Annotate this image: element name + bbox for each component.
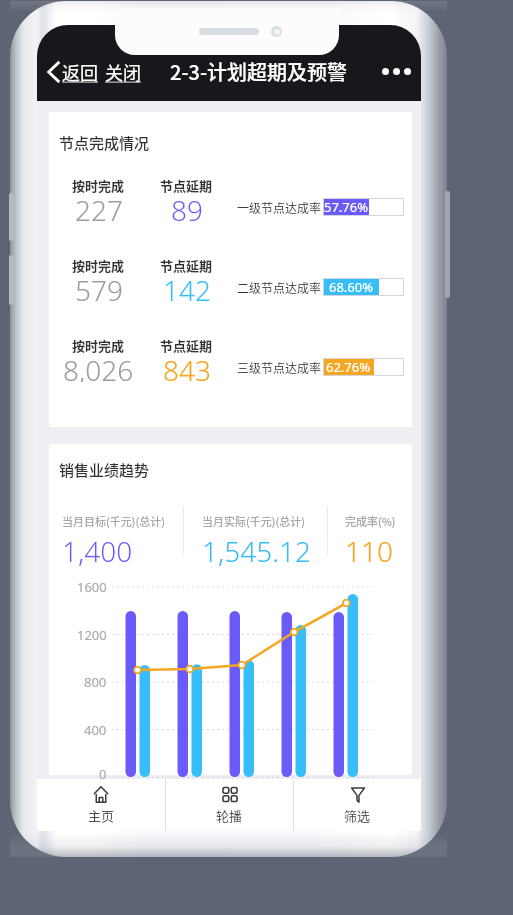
staticText: 89: [171, 191, 203, 222]
staticText: 62.76%: [326, 358, 371, 376]
staticText: 节点延期: [160, 176, 213, 195]
staticText: 0: [99, 765, 107, 783]
staticText: 当月目标(千元)(总计): [62, 513, 165, 529]
staticText: 完成率(%): [345, 513, 396, 529]
staticText: 三级节点达成率: [237, 359, 322, 376]
staticText: 节点延期: [160, 336, 213, 355]
button[interactable]: More options: [381, 63, 411, 79]
staticText: 按时完成: [72, 176, 125, 195]
staticText: 1,400: [62, 532, 133, 570]
staticText: 800: [84, 673, 107, 691]
staticText: 关闭: [105, 59, 141, 85]
button[interactable]: 筛选: [294, 779, 421, 831]
staticText: 当月实际(千元)(总计): [202, 513, 305, 529]
staticText: 57.76%: [324, 198, 369, 216]
staticText: 2-3-计划超期及预警: [170, 57, 348, 86]
staticText: 节点完成情况: [59, 132, 150, 154]
staticText: 销售业绩趋势: [59, 459, 150, 481]
staticText: 8,026: [63, 351, 134, 382]
staticText: 轮播: [216, 806, 243, 825]
staticText: 579: [75, 271, 123, 302]
staticText: 一级节点达成率: [237, 199, 322, 216]
staticText: 110: [345, 532, 393, 570]
staticText: 1600: [77, 578, 107, 596]
staticText: 返回: [62, 59, 98, 85]
staticText: 二级节点达成率: [237, 279, 322, 296]
staticText: 筛选: [344, 806, 371, 825]
staticText: 843: [163, 351, 211, 382]
staticText: 主页: [88, 806, 115, 825]
staticText: 400: [84, 721, 107, 739]
staticText: 按时完成: [72, 256, 125, 275]
staticText: 142: [163, 271, 211, 302]
button[interactable]: 关闭: [105, 58, 141, 86]
staticText: 按时完成: [72, 336, 125, 355]
staticText: 1200: [77, 626, 107, 644]
staticText: 节点延期: [160, 256, 213, 275]
button[interactable]: 轮播: [166, 779, 293, 831]
button[interactable]: 主页: [37, 779, 165, 831]
staticText: 68.60%: [329, 278, 374, 296]
staticText: 227: [75, 191, 123, 222]
staticText: 1,545.12: [202, 532, 312, 570]
button[interactable]: 返回: [47, 58, 98, 86]
